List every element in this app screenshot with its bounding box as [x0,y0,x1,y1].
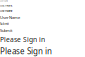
staticText: UserName [0,9,13,13]
staticText: Please Sign in [0,46,52,56]
staticText: UserName [0,4,13,7]
staticText: Submit [0,28,12,33]
staticText: UserName [0,0,8,2]
staticText: UserName [0,15,20,20]
staticText: Submit [0,22,9,26]
staticText: Please Sign in [0,35,45,44]
